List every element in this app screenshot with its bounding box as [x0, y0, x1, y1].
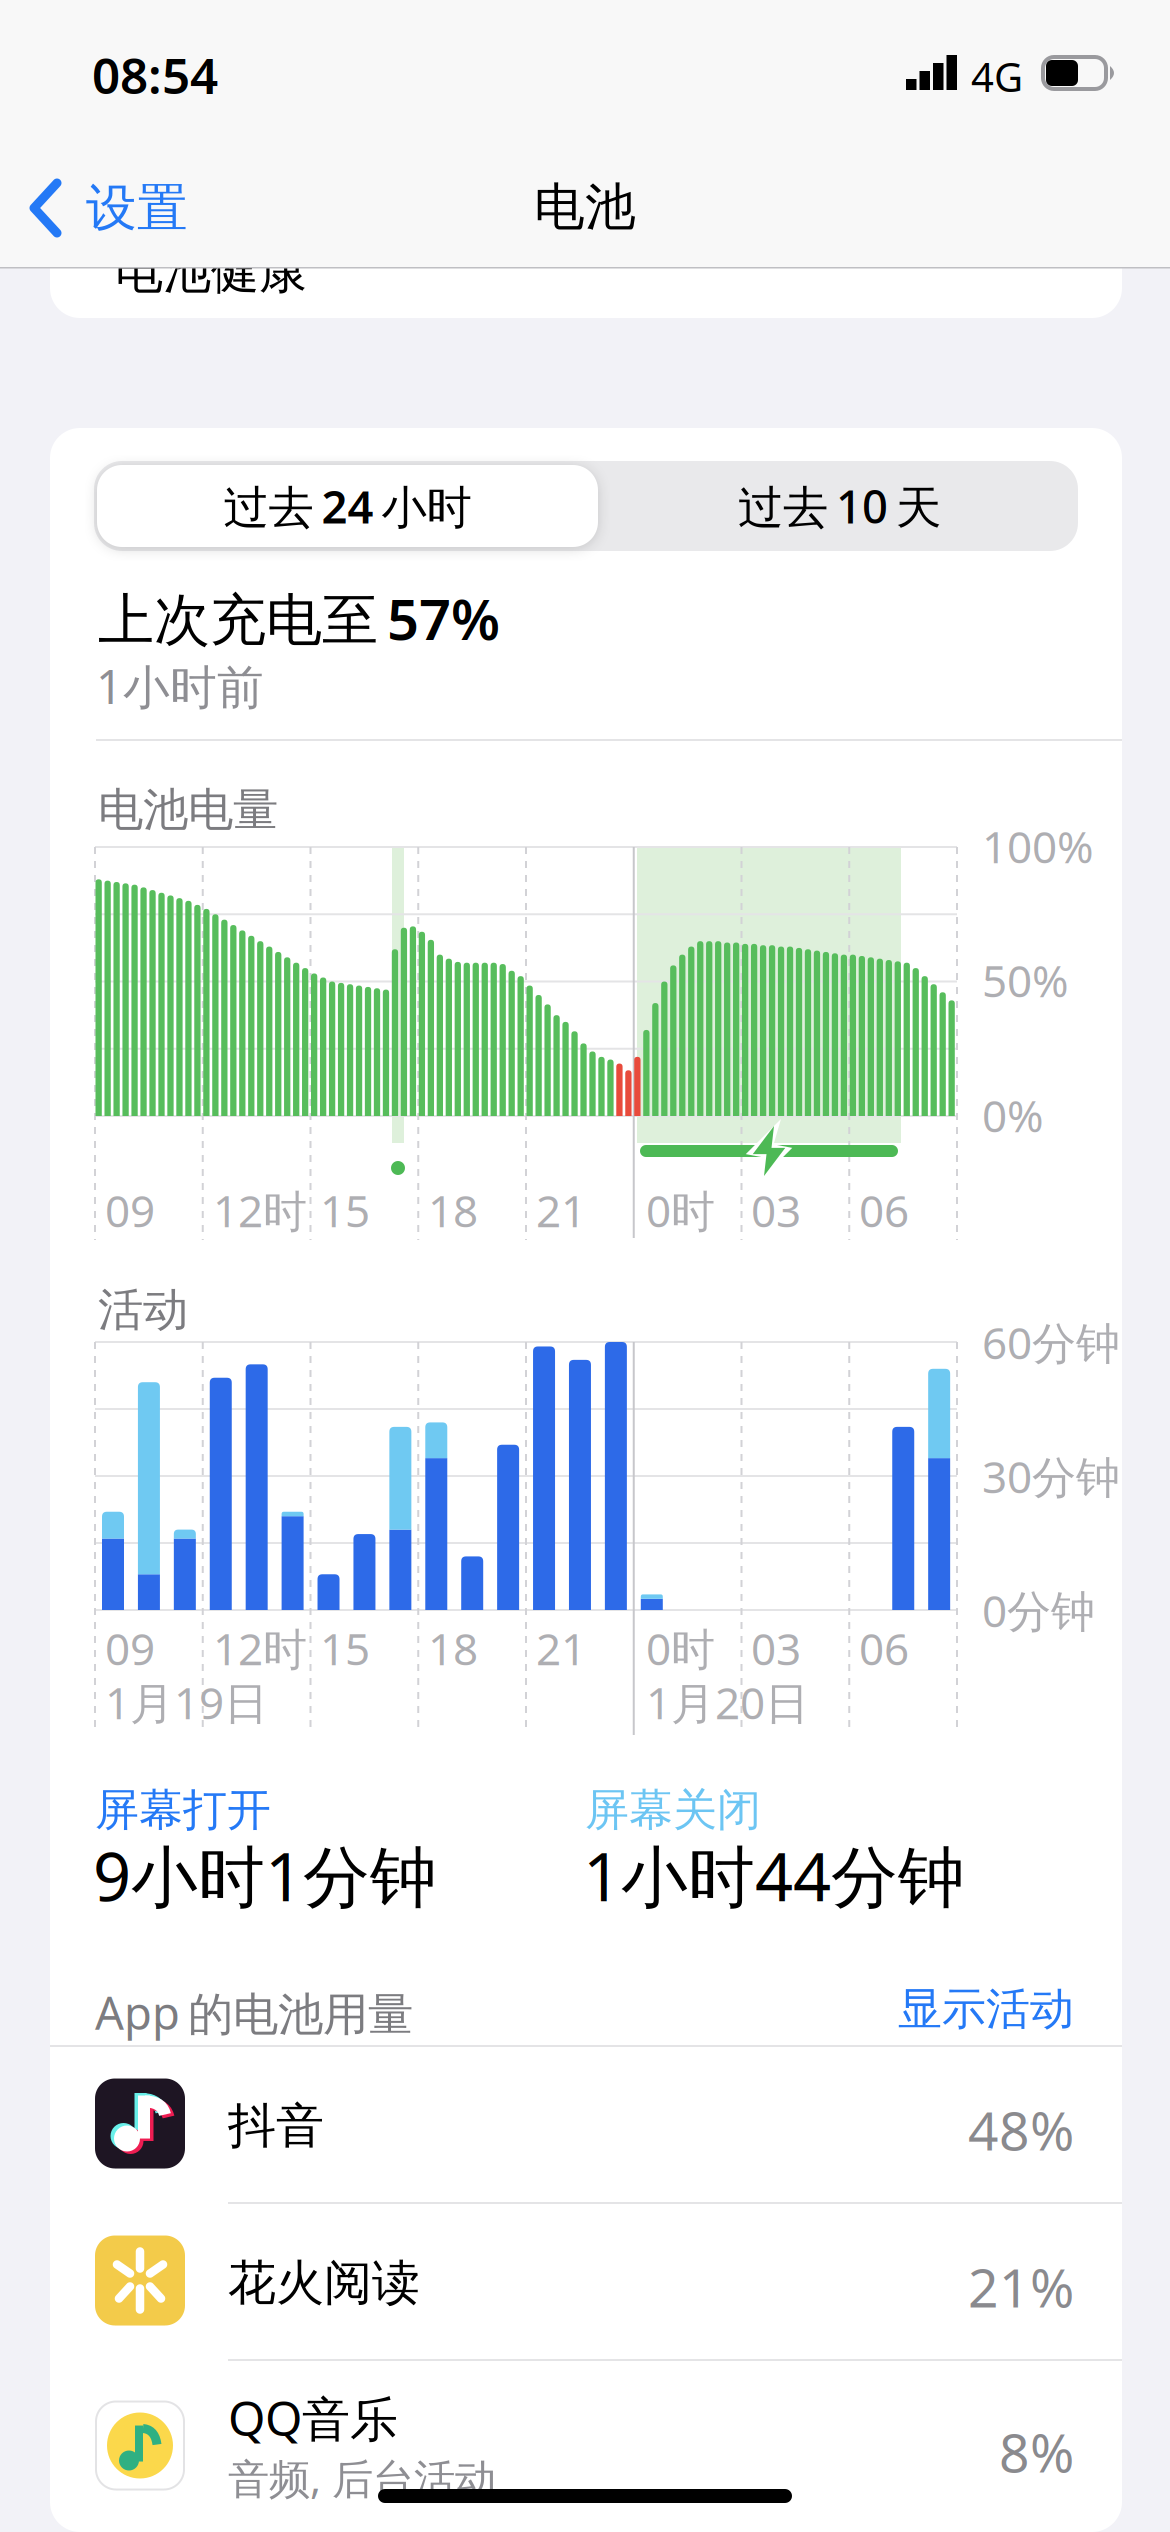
staticText: 21	[536, 1181, 586, 1239]
staticText: 花火阅读	[228, 2253, 420, 2312]
staticText: 1小时前	[96, 655, 264, 717]
staticText: 50%	[982, 951, 1069, 1009]
staticText: 21	[536, 1619, 586, 1677]
staticText: 21%	[968, 2251, 1074, 2322]
staticText: 18	[428, 1619, 478, 1677]
staticText: 15	[320, 1619, 370, 1677]
staticText: 抖音	[228, 2096, 324, 2155]
staticText: 12时	[213, 1181, 307, 1239]
staticText: 0%	[982, 1086, 1044, 1144]
staticText: 18	[428, 1181, 478, 1239]
staticText: 4G	[971, 50, 1023, 103]
staticText: 电池健康	[115, 242, 307, 301]
staticText: 9小时1分钟	[93, 1831, 437, 1919]
button[interactable]: 电池健康	[50, 160, 1122, 318]
button[interactable]: QQ音乐	[50, 2359, 1122, 2532]
staticText: 屏幕打开	[95, 1783, 271, 1837]
staticText: 12时	[213, 1619, 307, 1677]
staticText: 06	[859, 1181, 909, 1239]
staticText: 100%	[982, 817, 1094, 875]
staticText: 06	[859, 1619, 909, 1677]
staticText: 1小时44分钟	[583, 1831, 965, 1919]
staticText: App 的电池用量	[95, 1982, 413, 2042]
staticText: 09	[105, 1619, 155, 1677]
staticText: 过去 10 天	[738, 476, 941, 536]
button[interactable]: 设置	[24, 170, 194, 246]
staticText: 0时	[646, 1181, 715, 1239]
button[interactable]: 显示活动	[94, 1982, 1074, 2036]
staticText: 09	[105, 1181, 155, 1239]
staticText: 1月19日	[105, 1673, 268, 1731]
staticText: 电池	[534, 176, 636, 238]
staticText: 03	[751, 1181, 801, 1239]
staticText: 15	[320, 1181, 370, 1239]
button[interactable]: 抖音	[50, 2045, 1122, 2202]
staticText: 过去 24 小时	[223, 476, 471, 536]
button[interactable]: 过去 10 天	[601, 461, 1078, 551]
staticText: 显示活动	[898, 1982, 1074, 2036]
staticText: 0分钟	[982, 1581, 1095, 1639]
staticText: 0时	[646, 1619, 715, 1677]
staticText: 设置	[86, 177, 188, 239]
staticText: 8%	[999, 2416, 1074, 2487]
button[interactable]: 过去 24 小时	[94, 461, 601, 551]
staticText: 08:54	[92, 42, 218, 107]
staticText: 音频, 后台活动	[228, 2450, 496, 2505]
staticText: 30分钟	[982, 1447, 1120, 1505]
staticText: QQ音乐	[228, 2385, 398, 2449]
staticText: 活动	[98, 1282, 188, 1338]
staticText: 48%	[968, 2094, 1074, 2165]
button[interactable]: 花火阅读	[50, 2202, 1122, 2359]
staticText: 电池电量	[98, 782, 278, 838]
staticText: 上次充电至 57%	[98, 581, 500, 655]
staticText: 60分钟	[982, 1313, 1120, 1371]
staticText: 1月20日	[646, 1673, 809, 1731]
staticText: 03	[751, 1619, 801, 1677]
staticText: 屏幕关闭	[585, 1783, 761, 1837]
